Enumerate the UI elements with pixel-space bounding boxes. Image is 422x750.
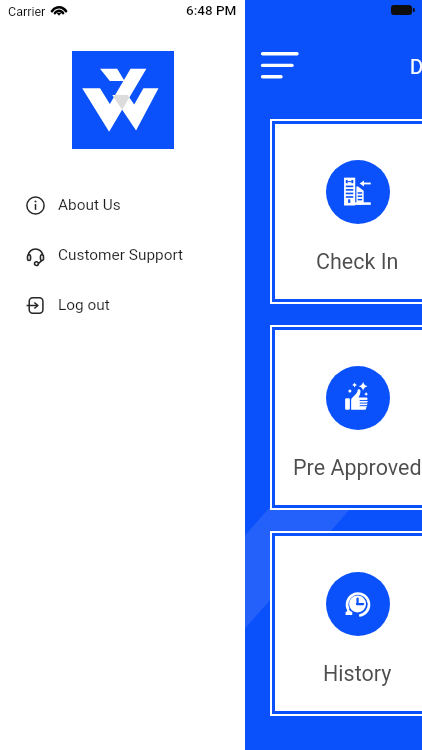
staticText: Customer Support	[58, 246, 184, 264]
staticText: Check In	[316, 249, 399, 274]
staticText: Pre Approved	[293, 455, 422, 480]
staticText: History	[323, 661, 392, 686]
staticText: Dashboard	[410, 55, 422, 78]
button[interactable]: Check In	[270, 119, 422, 304]
staticText: About Us	[58, 196, 121, 214]
button[interactable]: Customer Support	[0, 230, 245, 280]
staticText: 6:48 PM	[186, 2, 237, 18]
button[interactable]: Log out	[0, 280, 245, 330]
button[interactable]: About Us	[0, 180, 245, 230]
staticText: Carrier	[8, 4, 46, 19]
button[interactable]: History	[270, 531, 422, 716]
button[interactable]: Pre Approved	[270, 325, 422, 510]
staticText: Log out	[58, 296, 110, 314]
button[interactable]: Open navigation menu	[250, 42, 310, 88]
